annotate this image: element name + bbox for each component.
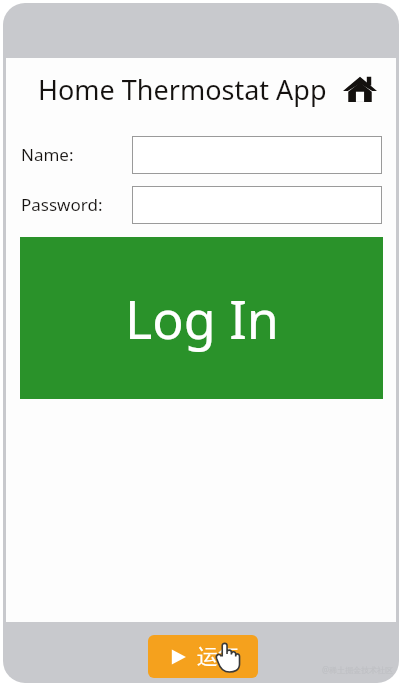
- button[interactable]: [132, 186, 382, 224]
- button[interactable]: Log In: [20, 237, 383, 399]
- button[interactable]: Home: [338, 67, 382, 111]
- staticText: Name:: [21, 143, 74, 166]
- staticText: Home Thermostat App: [38, 71, 327, 108]
- button[interactable]: 运行: [148, 635, 258, 678]
- staticText: 运行: [197, 644, 239, 670]
- button[interactable]: [132, 136, 382, 174]
- staticText: Log In: [125, 283, 279, 354]
- staticText: Password:: [21, 193, 103, 216]
